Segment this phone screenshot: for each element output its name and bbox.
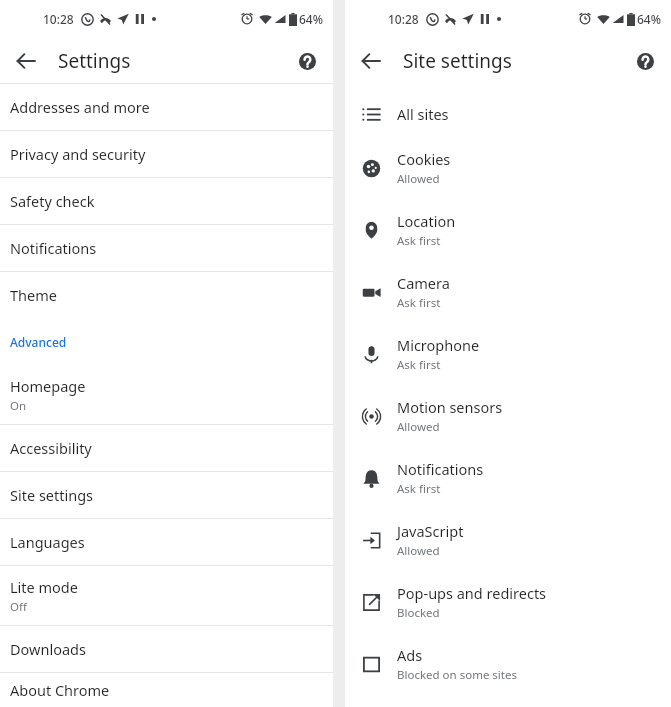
staticText: Allowed [397,543,440,559]
button[interactable]: All sites [345,91,671,137]
button[interactable]: Privacy and security [0,131,333,177]
staticText: Addresses and more [10,97,150,117]
staticText: Theme [10,285,57,305]
staticText: Downloads [10,639,86,659]
staticText: 64% [637,11,661,27]
button[interactable]: Help and feedback [289,43,325,79]
staticText: 10:28 [388,11,419,27]
staticText: Ask first [397,481,441,497]
staticText: Off [10,599,27,615]
staticText: Allowed [397,419,440,435]
button[interactable]: Location [345,199,671,261]
staticText: Site settings [403,48,512,74]
staticText: Accessibility [10,438,92,458]
button[interactable]: Ads [345,633,671,695]
staticText: Settings [58,48,131,74]
button[interactable]: Microphone [345,323,671,385]
button[interactable]: About Chrome [0,673,333,707]
button[interactable]: Lite mode [0,566,333,625]
button[interactable]: Safety check [0,178,333,224]
button[interactable]: Motion sensors [345,385,671,447]
button[interactable]: Languages [0,519,333,565]
staticText: Location [397,211,456,231]
staticText: Ask first [397,233,441,249]
staticText: Languages [10,532,85,552]
button[interactable]: Back [353,43,389,79]
staticText: JavaScript [397,521,464,541]
button[interactable]: Camera [345,261,671,323]
button[interactable]: Site settings [0,472,333,518]
staticText: Cookies [397,149,451,169]
staticText: Microphone [397,335,480,355]
staticText: About Chrome [10,680,110,700]
staticText: Blocked [397,605,440,621]
staticText: Privacy and security [10,144,146,164]
button[interactable]: Help and feedback [627,43,663,79]
button[interactable]: Notifications [0,225,333,271]
staticText: Homepage [10,376,86,396]
staticText: Advanced [10,334,67,350]
staticText: Ask first [397,295,441,311]
staticText: Camera [397,273,450,293]
staticText: Allowed [397,171,440,187]
staticText: 64% [299,11,323,27]
button[interactable]: Theme [0,272,333,318]
button[interactable]: Homepage [0,365,333,424]
staticText: Safety check [10,191,95,211]
staticText: All sites [397,104,449,124]
button[interactable]: Accessibility [0,425,333,471]
staticText: Pop-ups and redirects [397,583,547,603]
staticText: 10:28 [43,11,74,27]
staticText: Blocked on some sites [397,667,517,683]
staticText: Lite mode [10,577,78,597]
button[interactable]: Back [8,43,44,79]
button[interactable]: Cookies [345,137,671,199]
staticText: On [10,398,27,414]
staticText: Notifications [397,459,484,479]
button[interactable]: Pop-ups and redirects [345,571,671,633]
staticText: Ask first [397,357,441,373]
button[interactable]: Notifications [345,447,671,509]
button[interactable]: Addresses and more [0,84,333,130]
button[interactable]: JavaScript [345,509,671,571]
button[interactable]: Downloads [0,626,333,672]
staticText: Site settings [10,485,94,505]
staticText: Motion sensors [397,397,503,417]
staticText: Ads [397,645,423,665]
staticText: Notifications [10,238,97,258]
